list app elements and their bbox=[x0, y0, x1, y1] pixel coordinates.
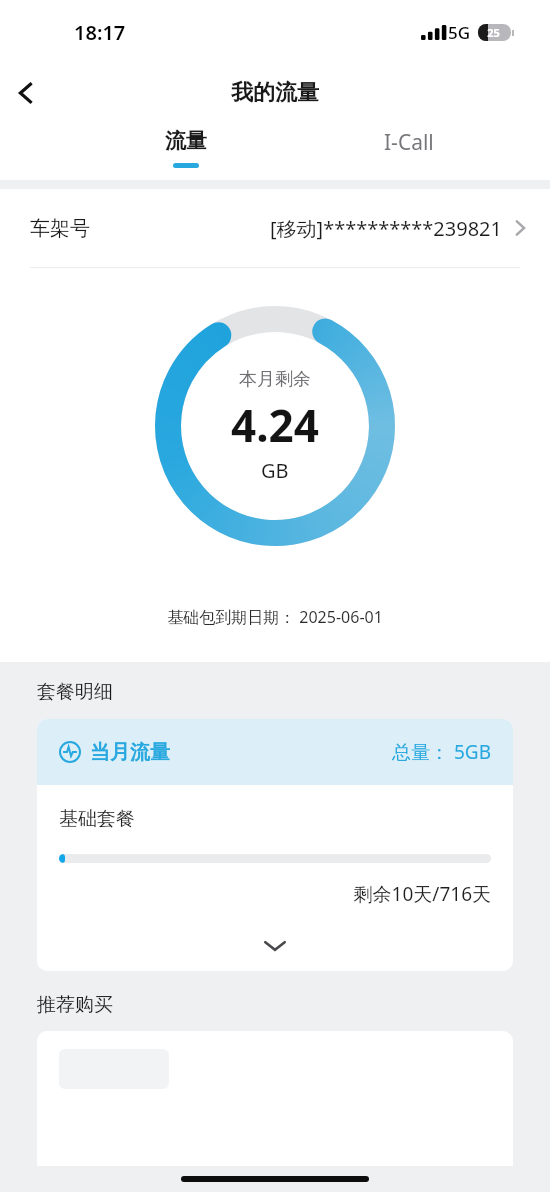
staticText: 基础套餐 bbox=[59, 807, 135, 831]
staticText: 套餐明细 bbox=[37, 680, 113, 704]
staticText: 推荐购买 bbox=[37, 993, 113, 1017]
staticText: 5G bbox=[448, 21, 471, 44]
button[interactable]: Expand bbox=[59, 929, 491, 963]
button[interactable]: Back bbox=[0, 67, 52, 119]
button[interactable]: I-Call bbox=[275, 122, 550, 180]
staticText: 总量： 5GB bbox=[392, 739, 491, 765]
staticText: 当月流量 bbox=[90, 740, 170, 765]
staticText: 我的流量 bbox=[231, 79, 319, 107]
staticText: 剩余10天/716天 bbox=[59, 881, 491, 907]
staticText: I-Call bbox=[384, 128, 434, 157]
staticText: 本月剩余 bbox=[239, 368, 311, 391]
staticText: 18:17 bbox=[74, 19, 126, 46]
staticText: 车架号 bbox=[30, 216, 90, 241]
staticText: 25 bbox=[478, 25, 509, 40]
staticText: 4.24 bbox=[231, 395, 319, 455]
button[interactable]: 车架号 bbox=[0, 189, 550, 267]
staticText: 基础包到期日期： 2025-06-01 bbox=[0, 606, 550, 628]
button[interactable]: 流量 bbox=[0, 122, 275, 180]
staticText: 流量 bbox=[165, 128, 207, 154]
staticText: [移动]**********239821 bbox=[270, 215, 502, 242]
staticText: GB bbox=[261, 457, 289, 484]
